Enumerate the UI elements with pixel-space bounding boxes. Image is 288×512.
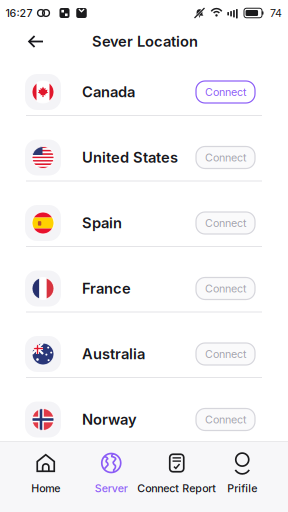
staticText: Connect bbox=[205, 151, 246, 164]
staticText: Connect bbox=[205, 413, 246, 426]
staticText: United States bbox=[82, 149, 178, 166]
staticText: Connect bbox=[205, 282, 246, 295]
button[interactable]: Prifile bbox=[209, 452, 275, 495]
button[interactable]: Connect bbox=[196, 146, 255, 168]
button[interactable]: Connect bbox=[196, 81, 255, 103]
staticText: Canada bbox=[82, 83, 135, 101]
staticText: Spain bbox=[82, 214, 122, 232]
staticText: Connect bbox=[205, 217, 246, 229]
staticText: Norway bbox=[82, 411, 137, 428]
staticText: Home bbox=[31, 482, 60, 495]
button[interactable]: Connect bbox=[196, 408, 255, 430]
staticText: Sever Location bbox=[92, 33, 198, 50]
staticText: 16:27 bbox=[5, 7, 32, 19]
staticText: Prifile bbox=[227, 482, 257, 495]
staticText: Server bbox=[95, 482, 128, 495]
staticText: 74 bbox=[270, 7, 282, 19]
staticText: France bbox=[82, 280, 131, 297]
button[interactable]: Connect bbox=[196, 343, 255, 365]
staticText: Connect Report bbox=[137, 482, 216, 495]
button[interactable]: Back bbox=[24, 29, 48, 53]
staticText: Connect bbox=[205, 348, 246, 360]
staticText: Australia bbox=[82, 345, 145, 363]
staticText: Connect bbox=[205, 86, 246, 98]
button[interactable]: Home bbox=[13, 452, 78, 495]
button[interactable]: Connect bbox=[196, 277, 255, 299]
button[interactable]: Connect Report bbox=[144, 452, 209, 495]
button[interactable]: Server bbox=[78, 452, 144, 495]
button[interactable]: Connect bbox=[196, 212, 255, 234]
